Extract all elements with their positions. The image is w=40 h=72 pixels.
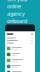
button[interactable] [5,69,35,72]
button[interactable] [5,57,35,63]
button[interactable] [5,51,35,57]
button[interactable] [5,45,35,51]
button[interactable] [5,63,35,69]
staticText: Get your online [7,0,28,10]
staticText: agency onboard [7,10,27,24]
